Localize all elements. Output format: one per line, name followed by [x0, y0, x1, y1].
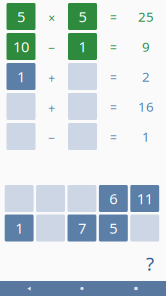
button[interactable]: 5	[68, 3, 97, 30]
staticText: 1	[78, 37, 86, 56]
staticText: =	[110, 129, 117, 145]
button[interactable]: 7	[67, 214, 96, 241]
staticText: =	[110, 99, 117, 115]
staticText: +	[48, 70, 55, 86]
staticText: 10	[13, 37, 29, 56]
button[interactable]: 6	[99, 185, 128, 212]
button[interactable]: Home	[58, 281, 106, 296]
staticText: −	[48, 130, 55, 146]
staticText: 25	[138, 8, 154, 25]
staticText: 1	[142, 128, 150, 145]
staticText: 1	[17, 67, 25, 86]
staticText: =	[110, 9, 117, 25]
staticText: 16	[138, 98, 154, 115]
button[interactable]	[130, 214, 159, 241]
staticText: 11	[137, 189, 153, 208]
staticText: =	[110, 39, 117, 55]
button[interactable]: 1	[5, 214, 34, 241]
button[interactable]: 1	[68, 33, 97, 60]
staticText: ?	[146, 251, 154, 276]
staticText: 9	[142, 38, 150, 55]
button[interactable]	[5, 185, 34, 212]
button[interactable]: 11	[130, 185, 159, 212]
button[interactable]	[36, 214, 65, 241]
button[interactable]: Hint	[140, 253, 160, 273]
staticText: ×	[48, 10, 55, 26]
staticText: 5	[17, 7, 25, 26]
button[interactable]: Back	[0, 281, 58, 296]
staticText: −	[48, 40, 55, 56]
button[interactable]: 5	[99, 214, 128, 241]
staticText: 5	[109, 218, 117, 238]
button[interactable]: 5	[6, 3, 35, 30]
staticText: 7	[78, 218, 86, 238]
staticText: 1	[15, 218, 23, 238]
staticText: 5	[78, 7, 86, 26]
button[interactable]	[6, 123, 35, 150]
button[interactable]: 10	[6, 33, 35, 60]
button[interactable]: Recent apps	[106, 281, 166, 296]
staticText: 6	[109, 189, 117, 208]
staticText: =	[110, 69, 117, 85]
staticText: +	[48, 100, 55, 116]
button[interactable]	[6, 93, 35, 120]
button[interactable]: 1	[6, 63, 35, 90]
staticText: 2	[142, 68, 150, 85]
